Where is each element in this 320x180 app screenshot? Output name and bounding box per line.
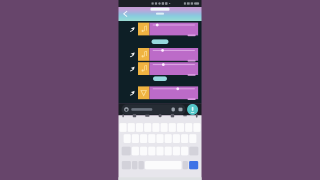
button[interactable]	[118, 86, 201, 99]
button[interactable]	[118, 48, 201, 61]
button[interactable]	[121, 104, 185, 114]
button[interactable]	[118, 62, 201, 75]
button[interactable]: Back	[121, 7, 130, 21]
button[interactable]: Record voice message	[187, 104, 198, 115]
button[interactable]	[118, 23, 201, 35]
